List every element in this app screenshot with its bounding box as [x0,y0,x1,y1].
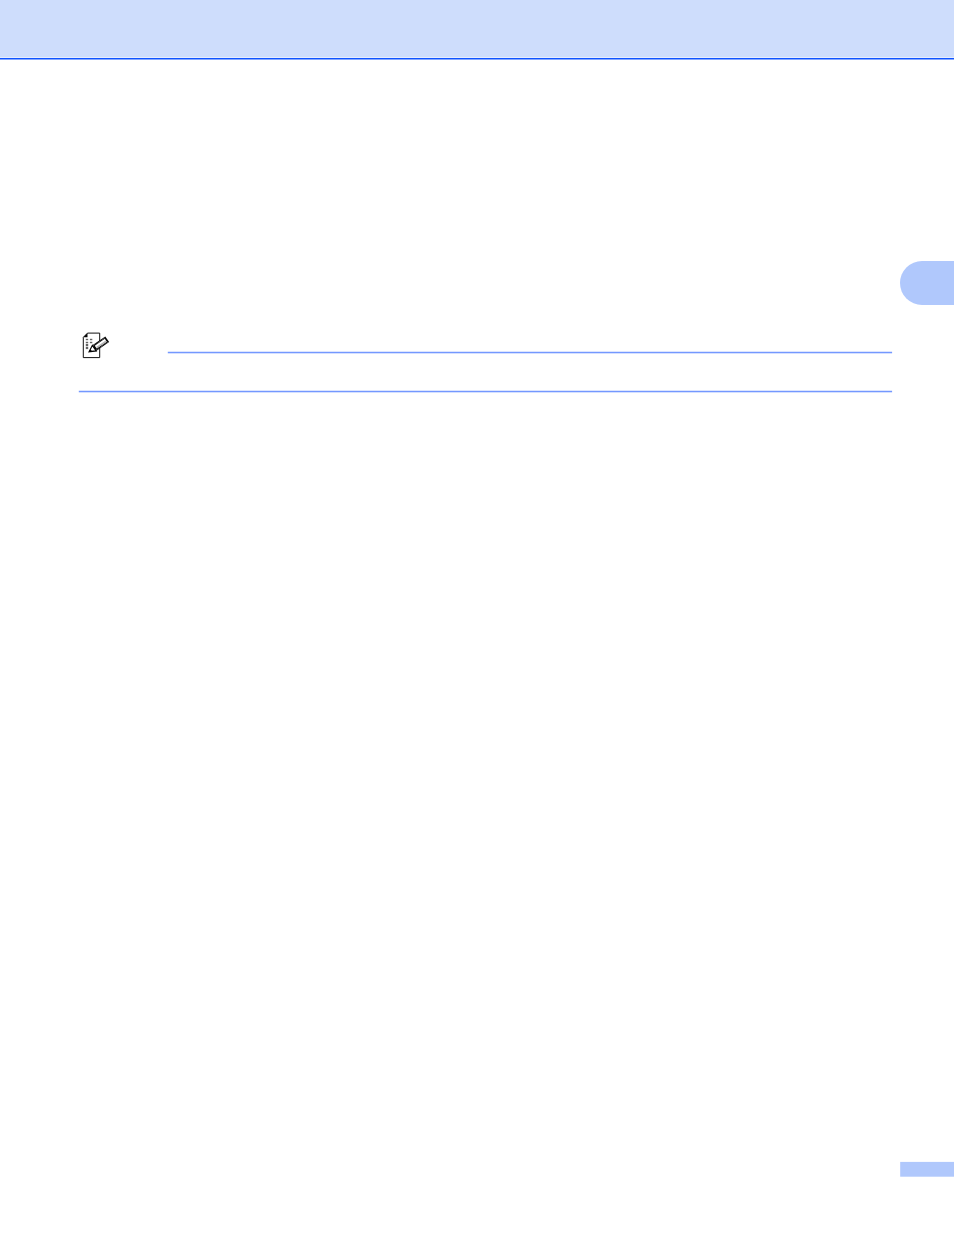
button[interactable]: Chapter tab [900,261,954,305]
button[interactable]: Note [81,329,111,359]
